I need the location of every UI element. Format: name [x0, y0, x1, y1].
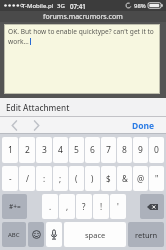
button[interactable]: Done [129, 118, 158, 134]
staticText: @ [137, 173, 145, 184]
button[interactable]: 4 [53, 137, 68, 163]
button[interactable]: 6 [85, 137, 100, 163]
button[interactable]: 5 [69, 137, 84, 163]
button[interactable]: Next field [28, 117, 44, 134]
staticText: 8 [122, 144, 127, 156]
staticText: ) [91, 173, 94, 184]
button[interactable]: 2 [19, 137, 35, 163]
staticText: OK. But how to enable quicktype? can't g… [8, 27, 154, 36]
button[interactable]: return [128, 222, 164, 247]
button[interactable]: ) [85, 166, 100, 191]
staticText: 4 [58, 144, 63, 156]
staticText: Edit Attachment [6, 102, 70, 113]
button[interactable]: ; [53, 166, 68, 191]
button[interactable]: & [117, 166, 132, 191]
button[interactable]: ' [110, 194, 126, 219]
staticText: - [9, 173, 12, 184]
button[interactable]: 9 [133, 137, 148, 163]
staticText: 3G [57, 2, 65, 10]
staticText: & [122, 173, 128, 184]
staticText: " [155, 173, 159, 184]
button[interactable]: OK. But how to enable quicktype? can't g… [4, 24, 160, 94]
staticText: return [135, 230, 158, 240]
button[interactable]: 7 [101, 137, 116, 163]
button[interactable]: $ [101, 166, 116, 191]
button[interactable]: 0 [149, 137, 164, 163]
button[interactable]: - [2, 166, 18, 191]
staticText: : [43, 173, 46, 184]
button[interactable]: ! [93, 194, 109, 219]
button[interactable]: space [64, 222, 126, 247]
button[interactable]: More symbols [2, 194, 27, 219]
staticText: . [49, 201, 52, 212]
button[interactable]: " [149, 166, 164, 191]
staticText: 1 [8, 144, 13, 156]
staticText: 7 [106, 144, 111, 156]
button[interactable]: 8 [117, 137, 132, 163]
button[interactable]: / [19, 166, 35, 191]
button[interactable]: ? [76, 194, 92, 219]
staticText: 98% [134, 2, 146, 10]
staticText: 9 [138, 144, 143, 156]
button[interactable]: ( [69, 166, 84, 191]
staticText: ( [75, 173, 78, 184]
staticText: ! [100, 201, 103, 212]
staticText: T-Mobile.pl [22, 2, 54, 10]
staticText: work... [8, 37, 29, 46]
staticText: forums.macrumors.com [43, 12, 123, 22]
staticText: ABC [8, 231, 20, 239]
button[interactable]: Emoji [28, 222, 44, 247]
button[interactable]: 3 [36, 137, 52, 163]
staticText: 6 [90, 144, 95, 156]
button[interactable]: Previous field [6, 117, 22, 134]
staticText: / [26, 173, 29, 184]
staticText: 3 [42, 144, 47, 156]
button[interactable]: , [59, 194, 75, 219]
staticText: Done [132, 120, 155, 132]
staticText: #+= [9, 202, 21, 211]
staticText: 07:41 [70, 2, 86, 10]
button[interactable]: Backspace [140, 194, 164, 219]
button[interactable]: @ [133, 166, 148, 191]
staticText: ' [117, 201, 119, 212]
staticText: 0 [154, 144, 159, 156]
staticText: 2 [25, 144, 30, 156]
staticText: ; [59, 173, 62, 184]
button[interactable]: Letters keyboard [2, 222, 26, 247]
button[interactable]: . [42, 194, 58, 219]
staticText: ? [82, 201, 86, 212]
staticText: space [85, 230, 106, 240]
button[interactable]: : [36, 166, 52, 191]
staticText: $ [106, 173, 111, 184]
staticText: , [66, 201, 69, 212]
button[interactable]: 1 [2, 137, 18, 163]
staticText: 5 [74, 144, 79, 156]
button[interactable]: Dictation [46, 222, 62, 247]
